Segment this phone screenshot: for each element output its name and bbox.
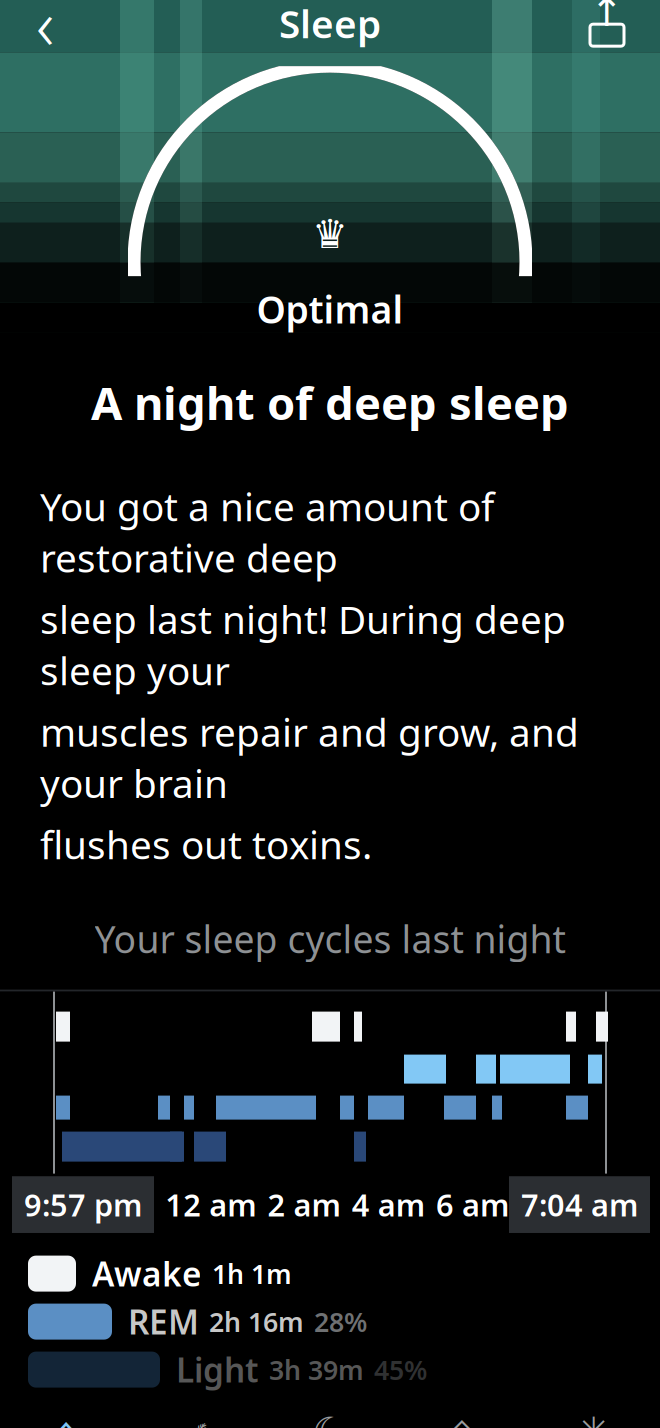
staticText: 7:04 am: [521, 1184, 638, 1225]
staticText: ☾: [312, 1409, 348, 1428]
staticText: 4 am: [352, 1184, 425, 1225]
staticText: Awake: [92, 1251, 202, 1296]
staticText: 45%: [374, 1352, 427, 1387]
staticText: Light: [176, 1347, 259, 1392]
staticText: Optimal: [256, 284, 403, 334]
staticText: ↑: [590, 0, 624, 35]
staticText: 3h 39m: [269, 1352, 364, 1387]
staticText: 6 am: [436, 1184, 509, 1225]
staticText: 2 am: [267, 1184, 340, 1225]
staticText: 9:57 pm: [24, 1184, 142, 1225]
staticText: ◇: [446, 1409, 477, 1428]
button[interactable]: ⌂: [0, 1409, 132, 1428]
staticText: ‹: [36, 0, 54, 69]
staticText: 2h 16m: [209, 1304, 304, 1339]
button[interactable]: Back: [16, 0, 74, 52]
staticText: Your sleep cycles last night: [94, 914, 565, 964]
button[interactable]: Share: [578, 0, 636, 52]
button[interactable]: ◇: [396, 1409, 528, 1428]
staticText: ♛: [312, 211, 348, 257]
staticText: A night of deep sleep: [91, 372, 569, 433]
staticText: 1h 1m: [212, 1256, 292, 1291]
staticText: You got a nice amount of restorative dee…: [40, 481, 494, 583]
staticText: sleep last night! During deep sleep your: [40, 593, 566, 696]
staticText: 28%: [314, 1304, 367, 1339]
button[interactable]: ⸙: [132, 1409, 264, 1428]
staticText: ✳: [577, 1409, 611, 1428]
staticText: 90: [248, 265, 412, 456]
staticText: 12 am: [165, 1184, 256, 1225]
button[interactable]: ✳: [528, 1409, 660, 1428]
staticText: flushes out toxins.: [40, 819, 372, 870]
button[interactable]: ☾: [264, 1409, 396, 1428]
staticText: REM: [128, 1299, 199, 1344]
staticText: Sleep: [279, 0, 381, 49]
staticText: muscles repair and grow, and your brain: [40, 706, 579, 809]
staticText: ⌂: [53, 1409, 78, 1428]
staticText: ⸙: [183, 1405, 213, 1428]
